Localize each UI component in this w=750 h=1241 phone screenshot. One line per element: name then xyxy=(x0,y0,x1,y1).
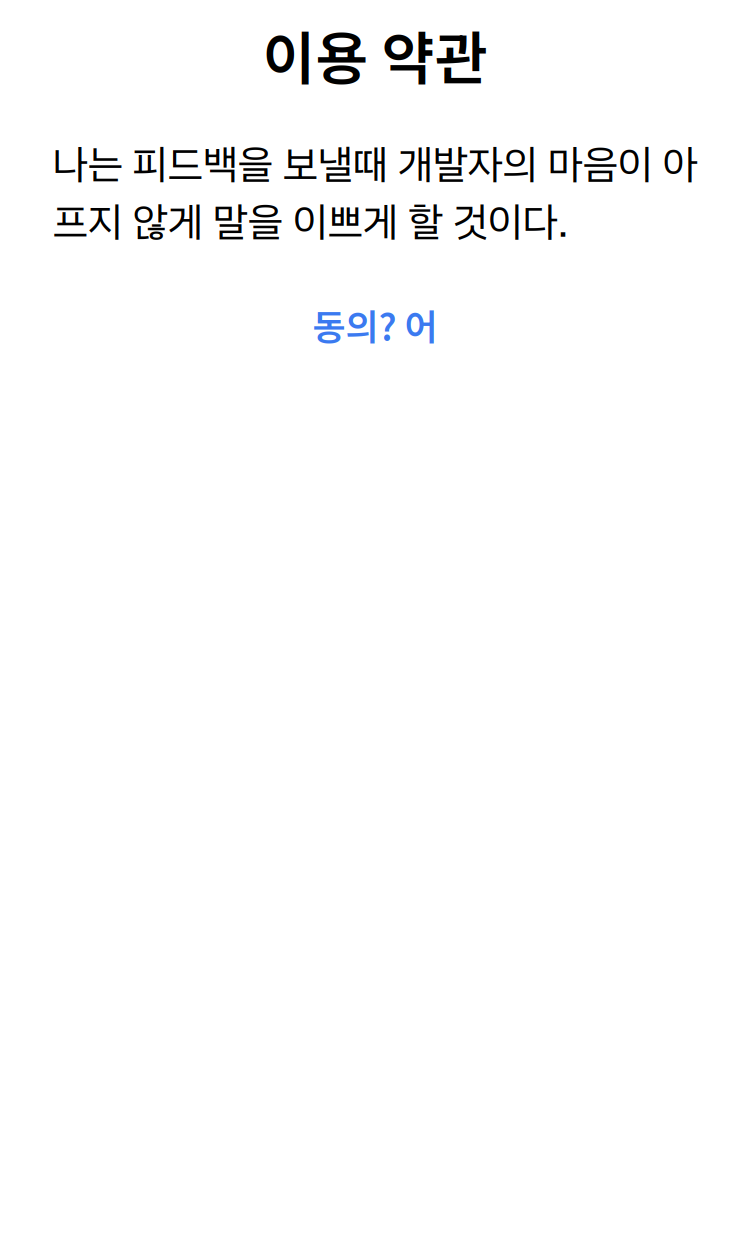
staticText: 나는 피드백을 보낼때 개발자의 마음이 아 xyxy=(52,140,697,189)
staticText: 동의? 어 xyxy=(312,299,437,351)
staticText: 프지 않게 말을 이쁘게 할 것이다. xyxy=(52,197,568,247)
button[interactable]: 동의? 어 xyxy=(288,289,461,361)
staticText: 이용 약관 xyxy=(262,13,487,96)
